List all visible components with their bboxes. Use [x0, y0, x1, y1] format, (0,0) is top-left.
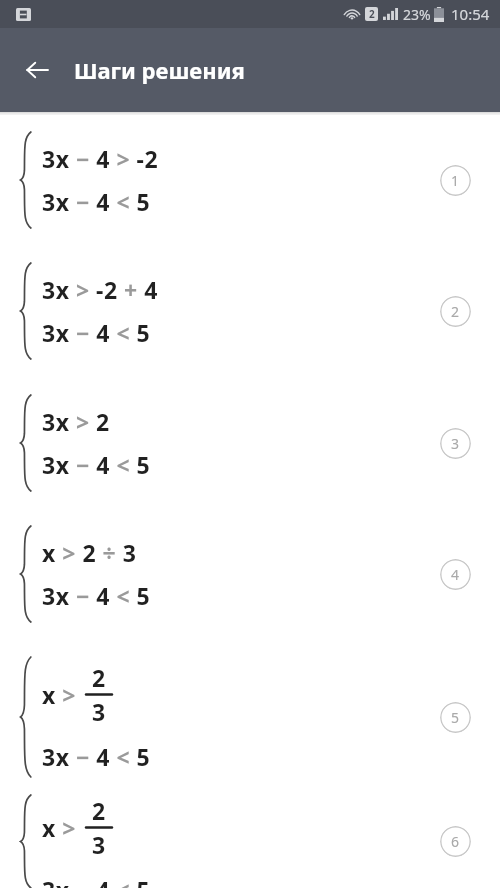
staticText: 3x − 4 < 5: [42, 580, 151, 611]
staticText: 1: [451, 171, 460, 190]
staticText: 5: [451, 708, 460, 727]
button[interactable]: 2: [440, 296, 471, 327]
staticText: 3x − 4 < 5: [42, 449, 151, 480]
staticText: 3: [451, 434, 460, 453]
button[interactable]: x >: [0, 639, 500, 795]
staticText: x >: [42, 812, 83, 843]
button[interactable]: 1: [440, 165, 471, 196]
button[interactable]: Back: [14, 47, 60, 93]
button[interactable]: x > 2 ÷ 3: [0, 509, 500, 639]
button[interactable]: 4: [440, 559, 471, 590]
staticText: 3: [92, 696, 106, 727]
staticText: x >: [42, 679, 83, 710]
staticText: 3x − 4 > -2: [42, 143, 159, 174]
staticText: 3x − 4 < 5: [42, 874, 151, 888]
button[interactable]: 6: [440, 826, 471, 857]
button[interactable]: 3x − 4 > -2: [0, 115, 500, 245]
staticText: 2: [92, 662, 106, 693]
staticText: 3x − 4 < 5: [42, 317, 151, 348]
staticText: 2: [369, 7, 375, 21]
staticText: x > 2 ÷ 3: [42, 537, 137, 568]
staticText: 10:54: [451, 4, 490, 24]
staticText: 4: [451, 565, 460, 584]
staticText: 3x > 2: [42, 406, 110, 437]
staticText: 2: [451, 302, 460, 321]
staticText: 3x − 4 < 5: [42, 741, 151, 772]
button[interactable]: 3x > 2: [0, 377, 500, 509]
button[interactable]: 3: [440, 428, 471, 459]
button[interactable]: 3x > -2 + 4: [0, 245, 500, 377]
button[interactable]: 5: [440, 702, 471, 733]
staticText: Шаги решения: [74, 55, 245, 85]
staticText: 2: [92, 795, 106, 826]
staticText: 3x > -2 + 4: [42, 274, 158, 305]
staticText: 3: [92, 829, 106, 860]
button[interactable]: x >: [0, 795, 500, 888]
staticText: 3x − 4 < 5: [42, 186, 151, 217]
staticText: 23%: [403, 5, 431, 24]
staticText: 6: [451, 832, 460, 851]
